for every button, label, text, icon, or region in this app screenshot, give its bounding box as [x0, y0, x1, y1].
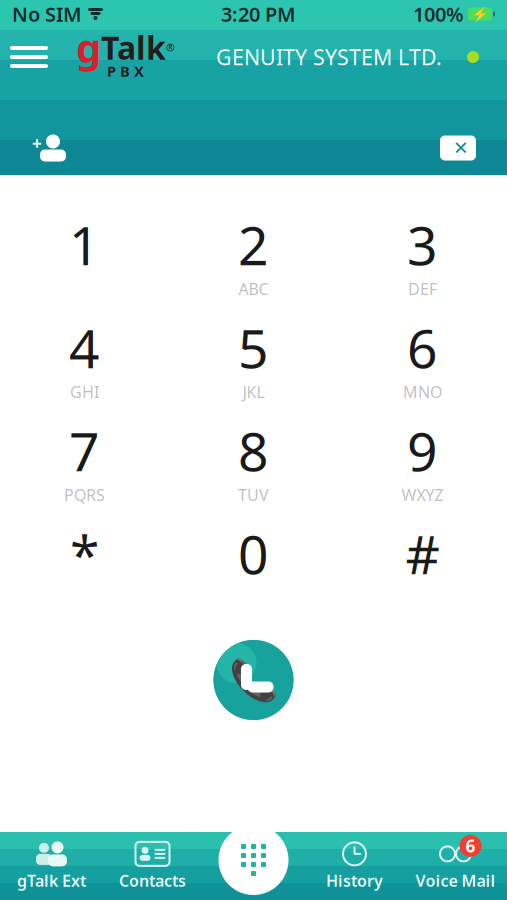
- staticText: 7: [69, 415, 100, 486]
- staticText: 3:20 PM: [221, 1, 296, 27]
- button[interactable]: 1: [0, 201, 169, 304]
- staticText: 6: [407, 312, 438, 383]
- button[interactable]: *: [0, 510, 169, 613]
- button[interactable]: 3: [338, 201, 507, 304]
- staticText: *: [70, 518, 99, 589]
- staticText: 9: [407, 415, 438, 486]
- staticText: 1: [69, 209, 100, 280]
- staticText: No SIM: [12, 1, 82, 27]
- staticText: #: [405, 518, 439, 589]
- staticText: P B X: [107, 61, 144, 81]
- staticText: 100%: [413, 1, 464, 27]
- staticText: gTalk Ext: [17, 870, 86, 891]
- staticText: +: [32, 131, 42, 154]
- button[interactable]: 9: [338, 407, 507, 510]
- staticText: 6: [465, 834, 475, 857]
- staticText: ✕: [453, 137, 469, 159]
- button[interactable]: Keypad: [218, 825, 288, 895]
- staticText: DEF: [408, 278, 437, 299]
- staticText: History: [326, 870, 383, 891]
- staticText: ABC: [238, 278, 268, 299]
- staticText: Talk: [101, 26, 166, 68]
- button[interactable]: 6: [405, 832, 506, 900]
- staticText: ®: [166, 40, 175, 54]
- staticText: 5: [238, 312, 269, 383]
- button[interactable]: #: [338, 510, 507, 613]
- staticText: PQRS: [64, 484, 105, 505]
- staticText: GHI: [70, 381, 99, 402]
- staticText: MNO: [403, 381, 442, 402]
- staticText: Contacts: [119, 870, 186, 891]
- staticText: 4: [69, 312, 100, 383]
- button[interactable]: 5: [169, 304, 338, 407]
- button[interactable]: gTalk Ext: [1, 832, 102, 900]
- staticText: TUV: [238, 484, 269, 505]
- staticText: ⚡: [471, 6, 488, 22]
- staticText: 0: [238, 518, 269, 589]
- staticText: WXYZ: [401, 484, 443, 505]
- staticText: 📞: [228, 657, 278, 703]
- staticText: g: [76, 21, 101, 74]
- button[interactable]: 4: [0, 304, 169, 407]
- button[interactable]: 0: [169, 510, 338, 613]
- button[interactable]: Menu: [0, 35, 58, 79]
- button[interactable]: History: [304, 832, 405, 900]
- staticText: JKL: [242, 381, 264, 402]
- button[interactable]: Delete: [423, 122, 493, 174]
- staticText: 8: [238, 415, 269, 486]
- staticText: 2: [238, 209, 269, 280]
- staticText: GENUITY SYSTEM LTD.: [216, 43, 442, 71]
- staticText: Voice Mail: [415, 870, 495, 891]
- staticText: 3: [407, 209, 438, 280]
- button[interactable]: 8: [169, 407, 338, 510]
- button[interactable]: Contacts: [102, 832, 203, 900]
- button[interactable]: 6: [338, 304, 507, 407]
- button[interactable]: Add contact: [14, 122, 84, 174]
- button[interactable]: Call: [208, 635, 298, 725]
- button[interactable]: 2: [169, 201, 338, 304]
- button[interactable]: 7: [0, 407, 169, 510]
